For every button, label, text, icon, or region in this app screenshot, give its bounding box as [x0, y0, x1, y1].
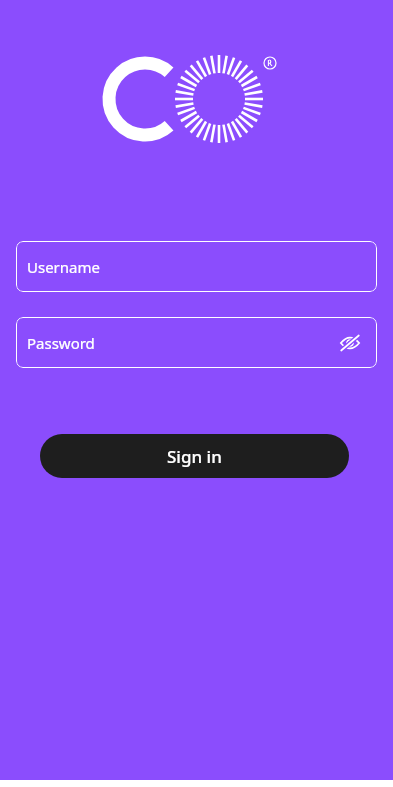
button[interactable]: Username [16, 241, 377, 292]
button[interactable]: Sign in [40, 434, 349, 478]
button[interactable]: Password [16, 317, 377, 368]
staticText: Username [27, 257, 100, 277]
button[interactable]: Show password [335, 328, 365, 358]
staticText: Password [27, 333, 95, 353]
staticText: Sign in [167, 445, 222, 468]
